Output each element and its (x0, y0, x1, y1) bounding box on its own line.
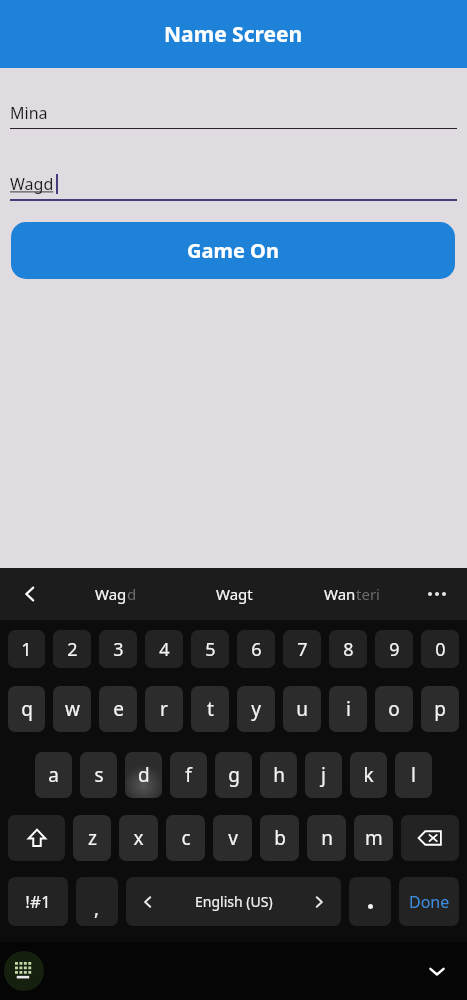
button[interactable] (349, 877, 391, 926)
staticText: a (48, 762, 59, 788)
button[interactable]: 0 (421, 630, 459, 668)
staticText: 4 (159, 637, 170, 662)
staticText: 5 (205, 637, 216, 662)
button[interactable]: Done (399, 877, 459, 926)
button[interactable]: English (US) (126, 877, 341, 926)
staticText: o (388, 696, 400, 722)
button[interactable]: 6 (237, 630, 275, 668)
staticText: 2 (67, 637, 78, 662)
button[interactable]: q (8, 686, 45, 732)
staticText: c (181, 825, 191, 851)
button[interactable]: 8 (329, 630, 367, 668)
button[interactable]: f (170, 752, 207, 798)
button[interactable]: o (375, 686, 413, 732)
button[interactable]: Wan (293, 568, 411, 620)
staticText: 0 (435, 637, 446, 662)
staticText: d (138, 762, 150, 788)
button[interactable]: u (283, 686, 321, 732)
button[interactable]: m (354, 815, 393, 861)
button[interactable]: z (73, 815, 111, 861)
staticText: 7 (297, 637, 308, 662)
button[interactable]: 3 (99, 630, 137, 668)
staticText: m (365, 825, 383, 851)
button[interactable]: b (260, 815, 299, 861)
staticText: Wagd (10, 173, 54, 195)
button[interactable]: Previous suggestions (8, 572, 52, 616)
button[interactable]: e (99, 686, 137, 732)
button[interactable]: More options (415, 572, 459, 616)
button[interactable]: n (307, 815, 346, 861)
staticText: d (127, 584, 137, 604)
staticText: i (346, 696, 351, 722)
button[interactable]: t (191, 686, 229, 732)
button[interactable]: s (80, 752, 117, 798)
button[interactable]: , (76, 877, 118, 926)
staticText: y (251, 696, 261, 722)
button[interactable]: y (237, 686, 275, 732)
button[interactable]: r (145, 686, 183, 732)
button[interactable]: j (305, 752, 342, 798)
staticText: h (273, 762, 285, 788)
staticText: g (228, 762, 240, 788)
staticText: 3 (113, 637, 124, 662)
staticText: Wan (324, 584, 356, 604)
button[interactable]: g (215, 752, 252, 798)
button[interactable]: Wagt (175, 568, 293, 620)
staticText: z (88, 825, 97, 851)
button[interactable]: k (350, 752, 387, 798)
staticText: Wagt (216, 584, 253, 604)
staticText: !#1 (25, 890, 51, 913)
button[interactable]: p (421, 686, 459, 732)
button[interactable]: x (119, 815, 158, 861)
staticText: j (321, 762, 326, 788)
button[interactable]: Shift (8, 815, 65, 861)
staticText: 6 (251, 637, 262, 662)
staticText: t (207, 696, 214, 722)
button[interactable]: i (329, 686, 367, 732)
staticText: 1 (21, 637, 32, 662)
button[interactable]: Wag (56, 568, 175, 620)
button[interactable]: 1 (8, 630, 45, 668)
button[interactable]: 5 (191, 630, 229, 668)
staticText: n (321, 825, 333, 851)
staticText: s (94, 762, 104, 788)
button[interactable]: !#1 (8, 877, 68, 926)
staticText: e (113, 696, 124, 722)
button[interactable]: Wagd (10, 161, 457, 207)
staticText: q (21, 696, 33, 722)
button[interactable]: 2 (53, 630, 91, 668)
button[interactable]: l (395, 752, 432, 798)
button[interactable]: 7 (283, 630, 321, 668)
button[interactable]: w (53, 686, 91, 732)
staticText: l (411, 762, 416, 788)
button[interactable]: Backspace (401, 815, 459, 861)
button[interactable]: 4 (145, 630, 183, 668)
button[interactable]: Game On (11, 222, 455, 279)
button[interactable]: d (125, 752, 162, 798)
staticText: 8 (343, 637, 354, 662)
staticText: teri (356, 584, 380, 604)
staticText: 9 (389, 637, 400, 662)
staticText: English (US) (195, 892, 273, 911)
staticText: r (160, 696, 168, 722)
staticText: k (363, 762, 374, 788)
staticText: Wag (95, 584, 127, 604)
staticText: x (133, 825, 144, 851)
button[interactable]: c (166, 815, 205, 861)
button[interactable]: Change keyboard (4, 951, 44, 991)
button[interactable]: Mina (10, 90, 457, 136)
staticText: , (94, 895, 100, 921)
staticText: b (274, 825, 286, 851)
button[interactable]: a (35, 752, 72, 798)
staticText: f (185, 762, 192, 788)
button[interactable]: h (260, 752, 297, 798)
staticText: Name Screen (164, 20, 303, 49)
staticText: Mina (10, 102, 48, 124)
button[interactable]: 9 (375, 630, 413, 668)
staticText: p (434, 696, 446, 722)
button[interactable]: Hide keyboard (415, 949, 459, 993)
staticText: Done (409, 891, 450, 913)
button[interactable]: v (213, 815, 252, 861)
staticText: w (65, 696, 80, 722)
staticText: Game On (187, 237, 279, 264)
